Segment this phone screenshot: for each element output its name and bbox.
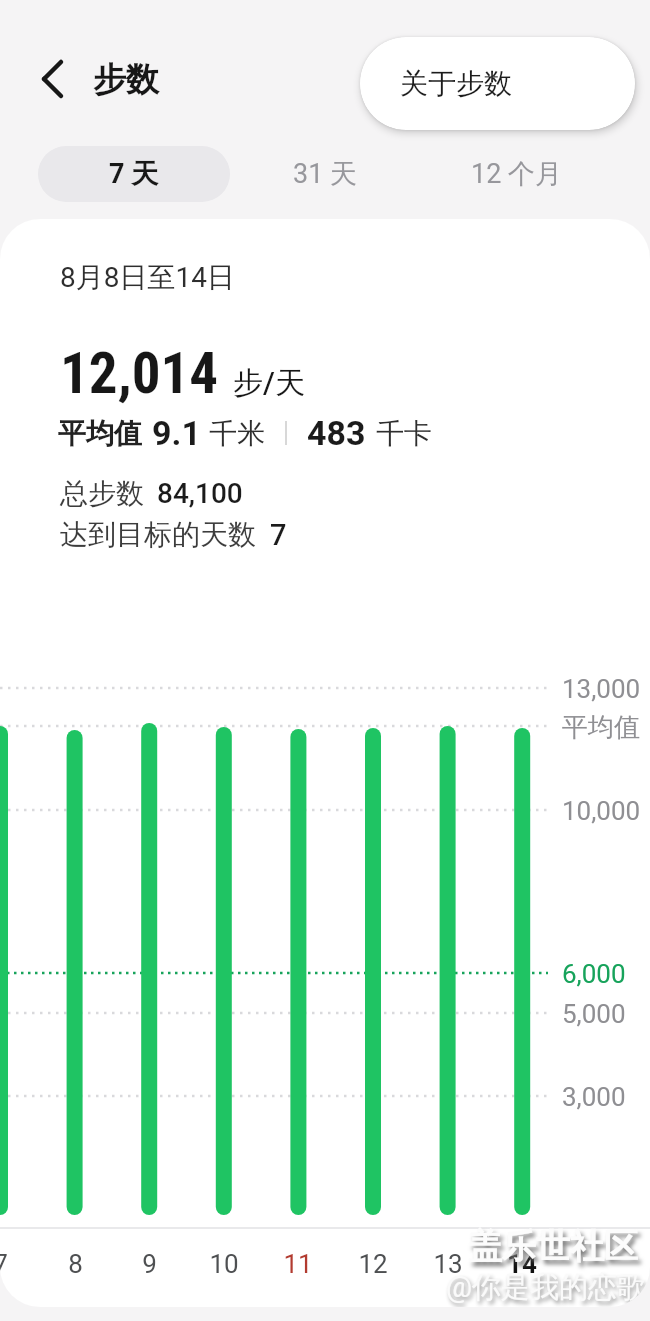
staticText: 8 <box>68 1249 83 1279</box>
staticText: 达到目标的天数 <box>60 517 256 552</box>
staticText: 关于步数 <box>400 66 512 101</box>
staticText: 13,000 <box>562 674 641 704</box>
staticText: 12 个月 <box>471 157 563 191</box>
staticText: 5,000 <box>562 999 626 1029</box>
staticText: 84,100 <box>157 477 243 510</box>
button[interactable]: 31 天 <box>230 146 421 202</box>
staticText: 平均值 <box>562 711 640 744</box>
staticText: 3,000 <box>562 1082 626 1112</box>
staticText: 14 <box>507 1249 537 1279</box>
staticText: 7 天 <box>109 157 159 191</box>
staticText: 7 <box>270 518 287 552</box>
staticText: 13 <box>433 1249 463 1279</box>
staticText: 7 <box>0 1249 8 1279</box>
staticText: 483 <box>307 413 366 453</box>
staticText: 31 天 <box>293 157 358 191</box>
button[interactable] <box>28 52 80 104</box>
staticText: 平均值 <box>58 416 142 451</box>
staticText: 盖乐世社区 <box>468 1225 638 1268</box>
button[interactable]: 关于步数 <box>360 37 635 130</box>
button[interactable]: 12 个月 <box>421 146 612 202</box>
staticText: 千卡 <box>376 416 432 451</box>
staticText: @你是我的恋歌 <box>446 1269 647 1306</box>
button[interactable]: 7 天 <box>38 146 230 202</box>
staticText: 步数 <box>93 59 159 101</box>
staticText: 10,000 <box>562 796 641 826</box>
staticText: 总步数 <box>60 476 144 511</box>
staticText: 11 <box>283 1249 313 1279</box>
staticText: 6,000 <box>562 959 626 989</box>
staticText: 12,014 <box>60 340 219 407</box>
staticText: 步/天 <box>233 364 305 402</box>
staticText: 千米 <box>209 416 265 451</box>
staticText: 10 <box>209 1249 239 1279</box>
staticText: 9.1 <box>152 413 201 453</box>
staticText: 9 <box>142 1249 157 1279</box>
staticText: 8月8日至14日 <box>60 260 235 295</box>
staticText: 12 <box>358 1249 388 1279</box>
